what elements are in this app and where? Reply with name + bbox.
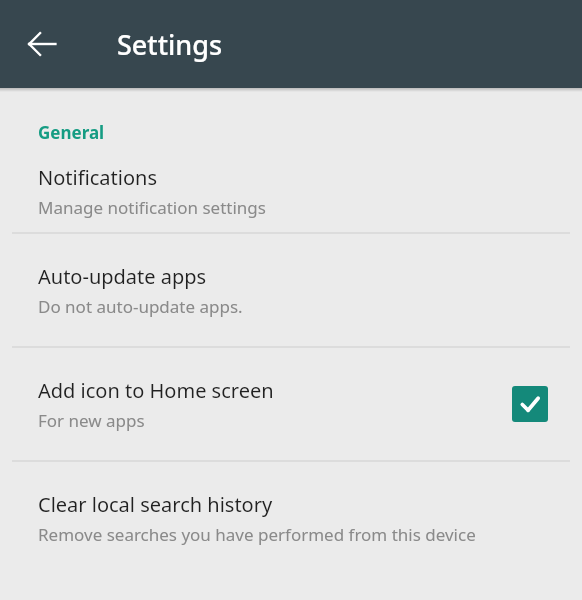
staticText: Notifications (38, 164, 157, 191)
staticText: Do not auto-update apps. (38, 295, 243, 318)
staticText: Settings (117, 26, 223, 63)
button[interactable]: Add icon to Home screen (0, 348, 582, 460)
button[interactable]: Back (12, 14, 72, 74)
staticText: Auto-update apps (38, 263, 207, 290)
button[interactable]: Auto-update apps (0, 234, 582, 346)
staticText: Manage notification settings (38, 196, 266, 219)
other: Add icon to Home screen checkbox (512, 386, 548, 422)
staticText: General (38, 121, 105, 144)
staticText: Clear local search history (38, 491, 273, 518)
staticText: For new apps (38, 409, 145, 432)
button[interactable]: Notifications (0, 150, 582, 232)
button[interactable]: Clear local search history (0, 462, 582, 574)
staticText: Add icon to Home screen (38, 377, 274, 404)
staticText: Remove searches you have performed from … (38, 523, 476, 546)
